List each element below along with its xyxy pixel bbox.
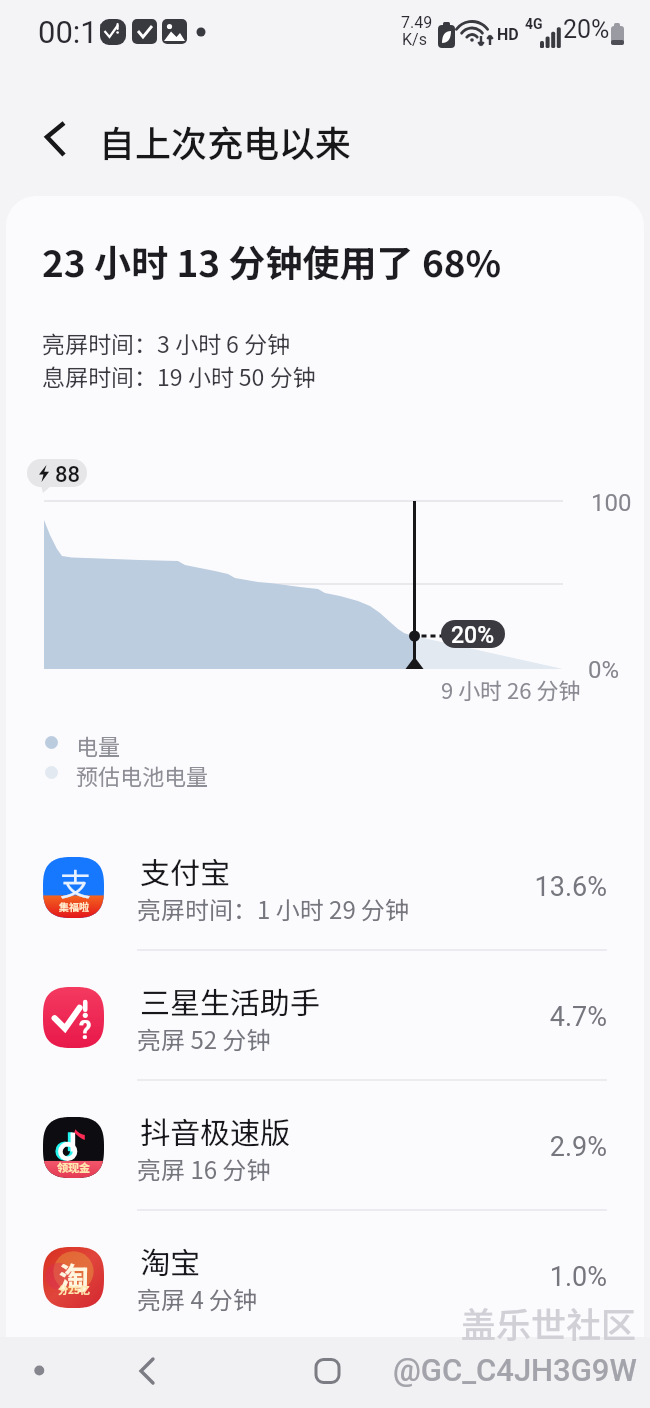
button[interactable]: Recents xyxy=(14,1345,66,1397)
staticText: 三星生活助手 xyxy=(140,979,320,1022)
staticText: 领现金 xyxy=(57,1159,90,1175)
staticText: 100 xyxy=(591,489,632,517)
staticText: 88 xyxy=(55,462,81,488)
button[interactable]: 领现金 xyxy=(0,1080,650,1210)
staticText: 亮屏时间：1 小时 29 分钟 xyxy=(137,891,410,926)
staticText: K/s xyxy=(402,30,427,49)
staticText: 7.49 xyxy=(401,13,433,32)
button[interactable]: 支 xyxy=(0,820,650,950)
staticText: ? xyxy=(79,1016,92,1045)
staticText: 9 小时 26 分钟 xyxy=(441,673,581,705)
staticText: @GC_C4JH3G9W xyxy=(393,1352,637,1388)
staticText: 4G xyxy=(525,16,543,32)
staticText: 淘 xyxy=(59,1254,89,1297)
staticText: 集福啦 xyxy=(59,899,89,913)
staticText: 13.6% xyxy=(440,871,607,903)
staticText: 预估电池电量 xyxy=(76,759,209,791)
staticText: HD xyxy=(497,25,519,44)
button[interactable]: Back xyxy=(24,104,90,170)
staticText: 00:11 xyxy=(38,14,116,50)
staticText: 2.9% xyxy=(440,1131,607,1163)
staticText: 4.7% xyxy=(440,1001,607,1033)
staticText: 分25亿 xyxy=(58,1282,90,1296)
staticText: 1.0% xyxy=(440,1261,607,1293)
staticText: 亮屏 16 分钟 xyxy=(137,1151,271,1186)
staticText: 淘宝 xyxy=(140,1239,200,1282)
button[interactable]: ? xyxy=(0,950,650,1080)
staticText: 23 小时 13 分钟使用了 68% xyxy=(42,234,502,288)
staticText: 亮屏 52 分钟 xyxy=(137,1021,271,1056)
staticText: 亮屏 4 分钟 xyxy=(137,1281,258,1316)
button[interactable]: Back xyxy=(121,1345,173,1397)
staticText: 支付宝 xyxy=(140,849,230,892)
staticText: 支 xyxy=(60,860,91,905)
staticText: 20% xyxy=(563,15,610,44)
staticText: 息屏时间：19 小时 50 分钟 xyxy=(42,359,316,392)
staticText: 抖音极速版 xyxy=(140,1109,290,1152)
staticText: 20% xyxy=(451,622,495,649)
staticText: 电量 xyxy=(76,729,121,761)
button[interactable]: 淘 xyxy=(0,1210,650,1340)
staticText: 自上次充电以来 xyxy=(99,115,352,167)
button[interactable]: Home xyxy=(302,1345,354,1397)
staticText: 亮屏时间：3 小时 6 分钟 xyxy=(42,326,290,359)
staticText: 盖乐世社区 xyxy=(461,1297,637,1348)
staticText: 0% xyxy=(588,656,620,684)
